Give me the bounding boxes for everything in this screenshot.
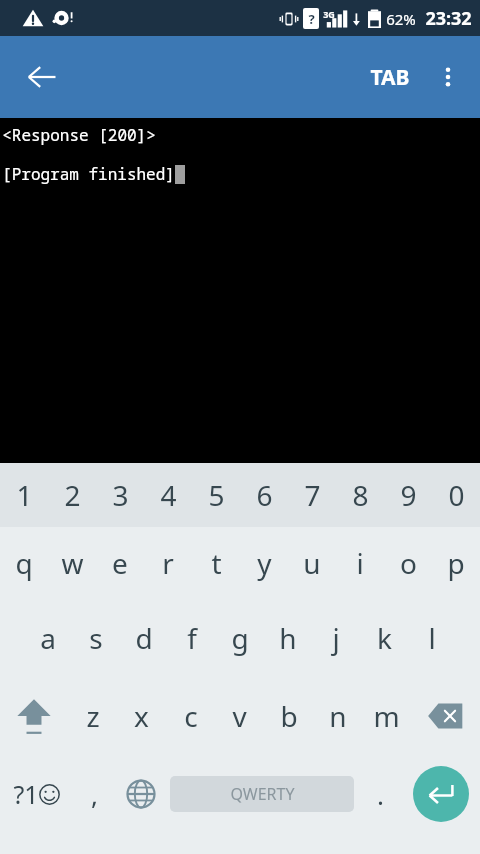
button[interactable]: q [0, 527, 48, 599]
button[interactable]: r [144, 527, 192, 599]
button[interactable]: d [120, 599, 168, 677]
staticText: y [257, 544, 272, 582]
button[interactable]: <Response [200]> [0, 118, 480, 463]
staticText: z [86, 697, 100, 735]
button[interactable]: p [432, 527, 480, 599]
button[interactable]: o [384, 527, 432, 599]
staticText: e [112, 544, 128, 582]
staticText: v [232, 697, 247, 735]
staticText: 3G [323, 8, 335, 20]
button[interactable]: Enter [413, 766, 469, 822]
button[interactable]: 6 [240, 463, 288, 527]
button[interactable]: v [215, 677, 264, 755]
button[interactable]: 5 [192, 463, 240, 527]
staticText: 4 [160, 476, 177, 514]
button[interactable]: Change keyboard language [116, 755, 165, 833]
button[interactable]: e [96, 527, 144, 599]
button[interactable]: 7 [288, 463, 336, 527]
button[interactable]: h [264, 599, 312, 677]
staticText: . [377, 777, 384, 812]
button[interactable]: f [168, 599, 216, 677]
staticText: 62% [386, 9, 416, 29]
staticText: q [15, 544, 33, 582]
button[interactable]: j [312, 599, 360, 677]
staticText: 7 [304, 476, 321, 514]
button[interactable]: c [166, 677, 215, 755]
button[interactable]: 9 [384, 463, 432, 527]
staticText: g [231, 619, 249, 657]
staticText: l [428, 619, 436, 657]
staticText: 3 [112, 476, 129, 514]
staticText: h [279, 619, 297, 657]
button[interactable]: x [117, 677, 166, 755]
button[interactable]: Shift [0, 677, 68, 755]
staticText: b [280, 697, 298, 735]
button[interactable]: . [359, 755, 402, 833]
button[interactable]: u [288, 527, 336, 599]
staticText: 23:32 [425, 6, 472, 31]
staticText: x [134, 697, 149, 735]
button[interactable]: a [24, 599, 72, 677]
button[interactable]: n [313, 677, 362, 755]
button[interactable]: t [192, 527, 240, 599]
button[interactable]: 2 [48, 463, 96, 527]
button[interactable]: z [68, 677, 117, 755]
button[interactable]: w [48, 527, 96, 599]
button[interactable]: 8 [336, 463, 384, 527]
staticText: f [187, 619, 197, 657]
button[interactable]: 1 [0, 463, 48, 527]
staticText: <Response [200]> [2, 124, 156, 146]
button[interactable]: Backspace [411, 677, 480, 755]
button[interactable]: y [240, 527, 288, 599]
button[interactable]: b [264, 677, 313, 755]
staticText: d [135, 619, 153, 657]
staticText: , [91, 777, 98, 812]
button[interactable]: TAB [362, 51, 418, 104]
staticText: s [89, 619, 103, 657]
button[interactable]: s [72, 599, 120, 677]
staticText: i [356, 544, 364, 582]
staticText: n [329, 697, 347, 735]
staticText: j [332, 619, 340, 657]
staticText: o [400, 544, 417, 582]
button[interactable]: m [362, 677, 411, 755]
button[interactable]: 4 [144, 463, 192, 527]
staticText: ?1 [13, 777, 39, 811]
button[interactable]: k [360, 599, 408, 677]
staticText: [Program finished] [2, 163, 175, 185]
staticText: 1 [16, 476, 33, 514]
staticText: w [61, 544, 84, 582]
staticText: 9 [400, 476, 417, 514]
button[interactable]: 3 [96, 463, 144, 527]
button[interactable]: Back [14, 49, 70, 105]
staticText: t [211, 544, 222, 582]
staticText: TAB [370, 63, 410, 92]
button[interactable]: , [73, 755, 116, 833]
staticText: 5 [208, 476, 225, 514]
staticText: u [303, 544, 321, 582]
staticText: k [377, 619, 392, 657]
staticText: QWERTY [230, 783, 295, 805]
staticText: a [40, 619, 56, 657]
staticText: r [162, 544, 174, 582]
button[interactable]: l [408, 599, 456, 677]
staticText: 6 [256, 476, 273, 514]
button[interactable]: i [336, 527, 384, 599]
button[interactable]: Symbols and emoji [0, 755, 73, 833]
staticText: c [184, 697, 198, 735]
staticText: m [373, 697, 400, 735]
staticText: 2 [64, 476, 81, 514]
button[interactable]: g [216, 599, 264, 677]
button[interactable]: More options [422, 51, 474, 103]
staticText: 8 [352, 476, 369, 514]
button[interactable]: QWERTY [170, 776, 354, 812]
staticText: ? [308, 10, 315, 28]
staticText: p [447, 544, 465, 582]
button[interactable]: 0 [432, 463, 480, 527]
staticText: 0 [448, 476, 465, 514]
